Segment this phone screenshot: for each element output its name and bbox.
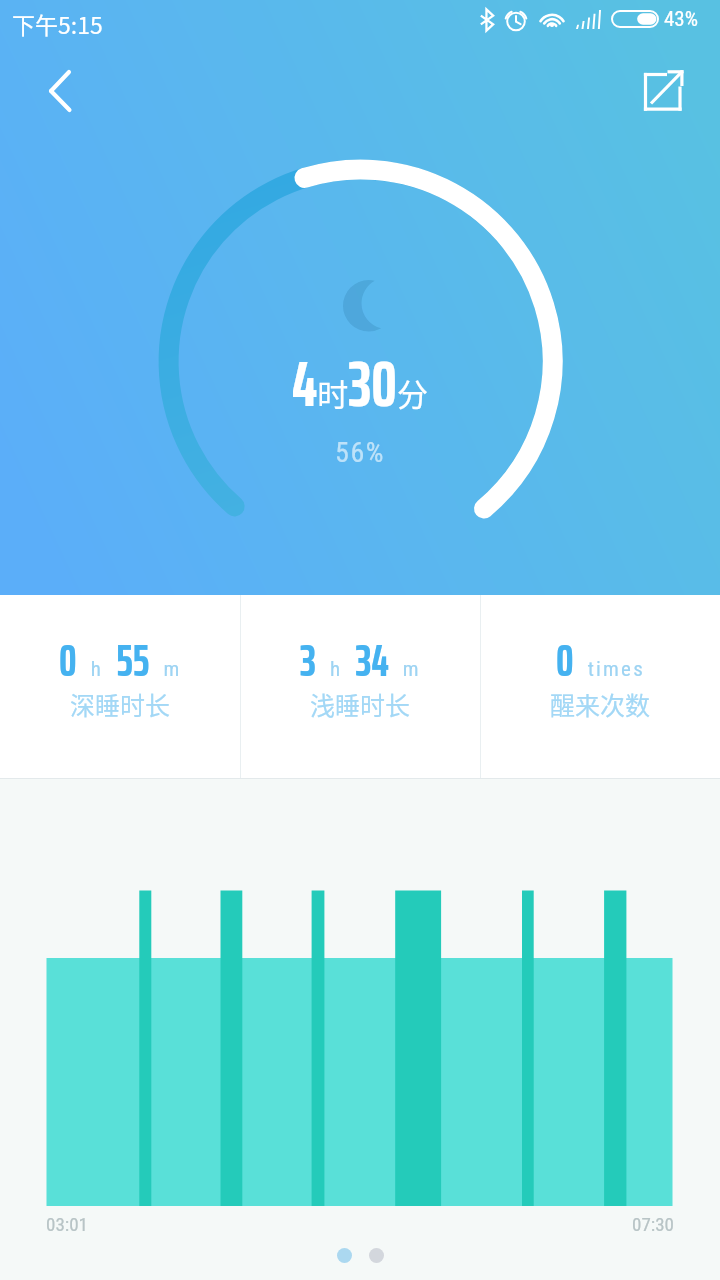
staticText: 03:01 [46,1213,88,1235]
staticText: 醒来次数 [550,686,651,722]
button[interactable]: 3 h 34 m [241,595,480,779]
staticText: 0 times [556,626,645,695]
staticText: 浅睡时长 [310,686,411,722]
staticText: 深睡时长 [70,686,171,722]
button[interactable]: 0 times [481,595,720,779]
staticText: 3 h 34 m [300,626,421,695]
button[interactable]: Share [630,56,698,124]
staticText: 下午5:15 [12,7,103,40]
button[interactable]: Back [30,61,90,121]
staticText: 4时30分 [292,333,428,434]
button[interactable]: 0 h 55 m [0,595,240,779]
staticText: 43% [664,7,699,32]
staticText: 07:30 [632,1213,674,1235]
staticText: 56% [335,436,386,469]
button[interactable]: Page 1 [337,1248,352,1263]
button[interactable]: Page 2 [369,1248,384,1263]
staticText: 0 h 55 m [59,626,182,695]
